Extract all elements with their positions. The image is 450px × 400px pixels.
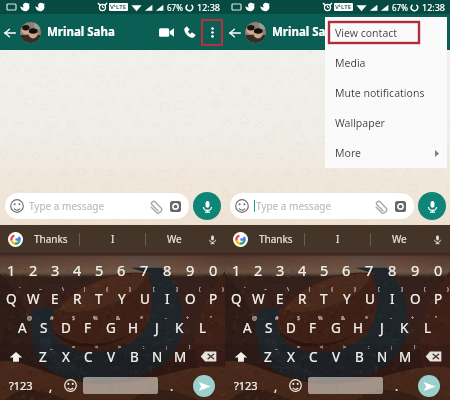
button[interactable]: S: [33, 313, 55, 342]
button[interactable]: B: [123, 342, 146, 371]
button[interactable]: Contact photo: [20, 22, 41, 43]
button[interactable]: M: [169, 342, 192, 371]
button[interactable]: O: [404, 284, 427, 313]
button[interactable]: 5: [313, 256, 335, 284]
button[interactable]: Video call: [154, 20, 178, 44]
button[interactable]: Call: [403, 20, 427, 44]
button[interactable]: 2: [22, 256, 44, 284]
button[interactable]: Back: [1, 24, 18, 41]
button[interactable]: Voice input: [202, 229, 222, 249]
button[interactable]: Voice message: [193, 192, 221, 220]
button[interactable]: S: [258, 313, 280, 342]
button[interactable]: J: [145, 313, 168, 342]
button[interactable]: Thanks: [248, 225, 304, 253]
button[interactable]: E: [44, 284, 66, 313]
button[interactable]: M: [394, 342, 417, 371]
button[interactable]: 4: [66, 256, 88, 284]
button[interactable]: T: [313, 284, 335, 313]
button[interactable]: Shift: [0, 342, 32, 371]
button[interactable]: Back: [226, 24, 243, 41]
button[interactable]: U: [133, 284, 156, 313]
button[interactable]: C: [77, 342, 100, 371]
button[interactable]: A: [236, 313, 258, 342]
button[interactable]: T: [88, 284, 110, 313]
button[interactable]: 1: [225, 256, 247, 284]
button[interactable]: 8: [381, 256, 404, 284]
button[interactable]: U: [358, 284, 381, 313]
button[interactable]: N: [371, 342, 394, 371]
button[interactable]: Type a message: [5, 193, 189, 219]
button[interactable]: ?123: [0, 371, 41, 400]
button[interactable]: Send: [408, 371, 450, 400]
button[interactable]: Y: [335, 284, 358, 313]
button[interactable]: We: [371, 225, 427, 253]
button[interactable]: P: [427, 284, 450, 313]
button[interactable]: I: [305, 225, 370, 253]
button[interactable]: We: [146, 225, 202, 253]
button[interactable]: Voice message: [418, 192, 446, 220]
button[interactable]: R: [66, 284, 88, 313]
button[interactable]: View contact: [325, 17, 447, 48]
button[interactable]: H: [347, 313, 370, 342]
button[interactable]: B: [348, 342, 371, 371]
button[interactable]: A: [11, 313, 33, 342]
button[interactable]: I: [381, 284, 404, 313]
button[interactable]: Attach: [374, 199, 388, 213]
button[interactable]: R: [291, 284, 313, 313]
button[interactable]: Thanks: [23, 225, 79, 253]
button[interactable]: ,: [41, 371, 60, 400]
button[interactable]: Camera: [395, 201, 406, 212]
button[interactable]: L: [191, 313, 214, 342]
button[interactable]: Send: [183, 371, 225, 400]
button[interactable]: 6: [110, 256, 133, 284]
button[interactable]: D: [55, 313, 77, 342]
button[interactable]: Q: [0, 284, 22, 313]
button[interactable]: F: [77, 313, 99, 342]
button[interactable]: Contact photo: [245, 22, 266, 43]
button[interactable]: Q: [225, 284, 247, 313]
button[interactable]: 6: [335, 256, 358, 284]
button[interactable]: More: [325, 138, 447, 168]
button[interactable]: 7: [133, 256, 156, 284]
button[interactable]: X: [279, 342, 302, 371]
button[interactable]: F: [302, 313, 324, 342]
button[interactable]: I: [80, 225, 145, 253]
button[interactable]: 3: [269, 256, 291, 284]
button[interactable]: Camera: [170, 201, 181, 212]
button[interactable]: Video call: [379, 20, 403, 44]
button[interactable]: C: [302, 342, 325, 371]
button[interactable]: 7: [358, 256, 381, 284]
button[interactable]: Google: [233, 232, 248, 247]
button[interactable]: Shift: [225, 342, 257, 371]
button[interactable]: Mute notifications: [325, 78, 447, 108]
button[interactable]: Call: [178, 20, 202, 44]
button[interactable]: 4: [291, 256, 313, 284]
button[interactable]: Space: [308, 377, 383, 394]
button[interactable]: Space: [83, 377, 158, 394]
button[interactable]: 1: [0, 256, 22, 284]
button[interactable]: ,: [266, 371, 285, 400]
button[interactable]: V: [325, 342, 348, 371]
button[interactable]: .: [161, 371, 183, 400]
button[interactable]: Google: [8, 232, 23, 247]
button[interactable]: O: [179, 284, 202, 313]
button[interactable]: L: [416, 313, 439, 342]
button[interactable]: .: [386, 371, 408, 400]
button[interactable]: Attach: [149, 199, 163, 213]
button[interactable]: Backspace: [192, 342, 225, 371]
button[interactable]: Z: [257, 342, 279, 371]
button[interactable]: E: [269, 284, 291, 313]
button[interactable]: Emoji: [60, 371, 80, 400]
button[interactable]: G: [99, 313, 122, 342]
button[interactable]: P: [202, 284, 225, 313]
button[interactable]: 5: [88, 256, 110, 284]
button[interactable]: W: [247, 284, 269, 313]
button[interactable]: X: [54, 342, 77, 371]
button[interactable]: Type a message: [230, 193, 414, 219]
button[interactable]: 0: [427, 256, 450, 284]
button[interactable]: I: [156, 284, 179, 313]
button[interactable]: K: [168, 313, 191, 342]
button[interactable]: K: [393, 313, 416, 342]
button[interactable]: 8: [156, 256, 179, 284]
